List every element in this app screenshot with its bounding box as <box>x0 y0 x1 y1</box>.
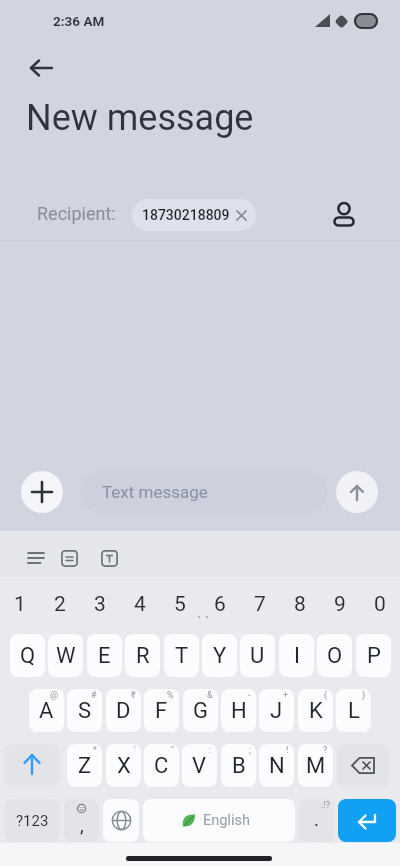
button[interactable]: N <box>259 744 294 787</box>
button[interactable]: English <box>143 799 295 842</box>
staticText: G <box>193 698 208 724</box>
button[interactable]: Y <box>202 634 237 677</box>
button[interactable]: 0 <box>360 577 400 632</box>
button[interactable]: 8 <box>280 577 320 632</box>
staticText: 2 <box>54 592 66 617</box>
staticText: U <box>250 643 265 669</box>
staticText: L <box>348 698 360 724</box>
button[interactable]: K <box>298 689 333 732</box>
staticText: ; <box>249 745 251 756</box>
staticText: 18730218809 <box>142 207 230 223</box>
staticText: Text message <box>102 482 208 502</box>
staticText: X <box>117 753 131 779</box>
staticText: * <box>93 745 97 756</box>
button[interactable] <box>327 194 361 234</box>
button[interactable]: 7 <box>240 577 280 632</box>
staticText: - <box>248 690 251 701</box>
button[interactable]: 1 <box>0 577 40 632</box>
staticText: T <box>175 643 189 669</box>
staticText: ( <box>324 690 328 701</box>
staticText: Z <box>78 753 92 779</box>
button[interactable]: 9 <box>320 577 360 632</box>
staticText: S <box>78 698 92 724</box>
staticText: # <box>91 690 97 701</box>
staticText: P <box>367 643 381 669</box>
staticText: V <box>192 753 207 779</box>
staticText: 3 <box>94 592 106 617</box>
staticText: E <box>98 643 111 669</box>
staticText: @ <box>50 690 59 701</box>
button[interactable]: J <box>259 689 294 732</box>
button[interactable]: R <box>125 634 160 677</box>
button[interactable]: 5 <box>160 577 200 632</box>
button[interactable]: Text message <box>80 470 327 514</box>
button[interactable] <box>4 744 60 787</box>
staticText: : <box>209 745 212 756</box>
staticText: M <box>306 753 326 779</box>
button[interactable]: P <box>356 634 391 677</box>
button[interactable]: S <box>67 689 102 732</box>
button[interactable]: L <box>336 689 371 732</box>
button[interactable]: 2 <box>40 577 80 632</box>
button[interactable]: A <box>29 689 64 732</box>
button[interactable]: G <box>183 689 218 732</box>
button[interactable]: C <box>144 744 179 787</box>
staticText: D <box>116 698 131 724</box>
button[interactable]: , <box>64 799 99 842</box>
button[interactable] <box>56 544 82 572</box>
staticText: 5 <box>174 592 186 617</box>
button[interactable]: Q <box>10 634 45 677</box>
staticText: A <box>39 698 54 724</box>
button[interactable]: 6 <box>200 577 240 632</box>
staticText: B <box>232 753 246 779</box>
button[interactable] <box>18 544 54 572</box>
button[interactable] <box>337 744 389 787</box>
button[interactable] <box>96 544 122 572</box>
staticText: Y <box>213 643 227 669</box>
staticText: ' <box>134 745 136 756</box>
staticText: ) <box>362 690 366 701</box>
button[interactable]: ?123 <box>4 799 60 842</box>
button[interactable] <box>336 471 378 513</box>
button[interactable]: V <box>182 744 217 787</box>
button[interactable]: B <box>221 744 256 787</box>
staticText: English <box>203 812 250 829</box>
staticText: % <box>167 690 174 701</box>
staticText: ? <box>323 745 328 756</box>
button[interactable]: U <box>240 634 275 677</box>
staticText: H <box>231 698 247 724</box>
button[interactable]: W <box>48 634 83 677</box>
button[interactable] <box>338 799 396 842</box>
button[interactable]: O <box>317 634 352 677</box>
staticText: I <box>294 643 300 669</box>
button[interactable]: X <box>106 744 141 787</box>
staticText: .!? <box>321 800 330 811</box>
button[interactable]: D <box>106 689 141 732</box>
staticText: New message <box>26 97 254 139</box>
button[interactable] <box>21 471 63 513</box>
staticText: & <box>207 690 213 701</box>
staticText: R <box>136 643 150 669</box>
staticText: 6 <box>214 592 226 617</box>
staticText: + <box>283 690 289 701</box>
button[interactable]: H <box>221 689 256 732</box>
button[interactable]: . <box>299 799 334 842</box>
button[interactable]: E <box>87 634 122 677</box>
button[interactable] <box>103 799 139 842</box>
staticText: J <box>270 698 283 724</box>
button[interactable]: 3 <box>80 577 120 632</box>
button[interactable]: 4 <box>120 577 160 632</box>
staticText: 7 <box>254 592 266 617</box>
button[interactable]: I <box>279 634 314 677</box>
staticText: 9 <box>334 592 346 617</box>
button[interactable]: F <box>144 689 179 732</box>
staticText: 4 <box>134 592 146 617</box>
button[interactable]: 18730218809 <box>132 199 256 231</box>
staticText: W <box>56 643 76 669</box>
button[interactable] <box>20 50 64 86</box>
button[interactable]: T <box>164 634 199 677</box>
staticText: Recipient: <box>37 203 116 224</box>
staticText: C <box>154 753 169 779</box>
button[interactable]: Z <box>67 744 102 787</box>
button[interactable]: M <box>298 744 333 787</box>
